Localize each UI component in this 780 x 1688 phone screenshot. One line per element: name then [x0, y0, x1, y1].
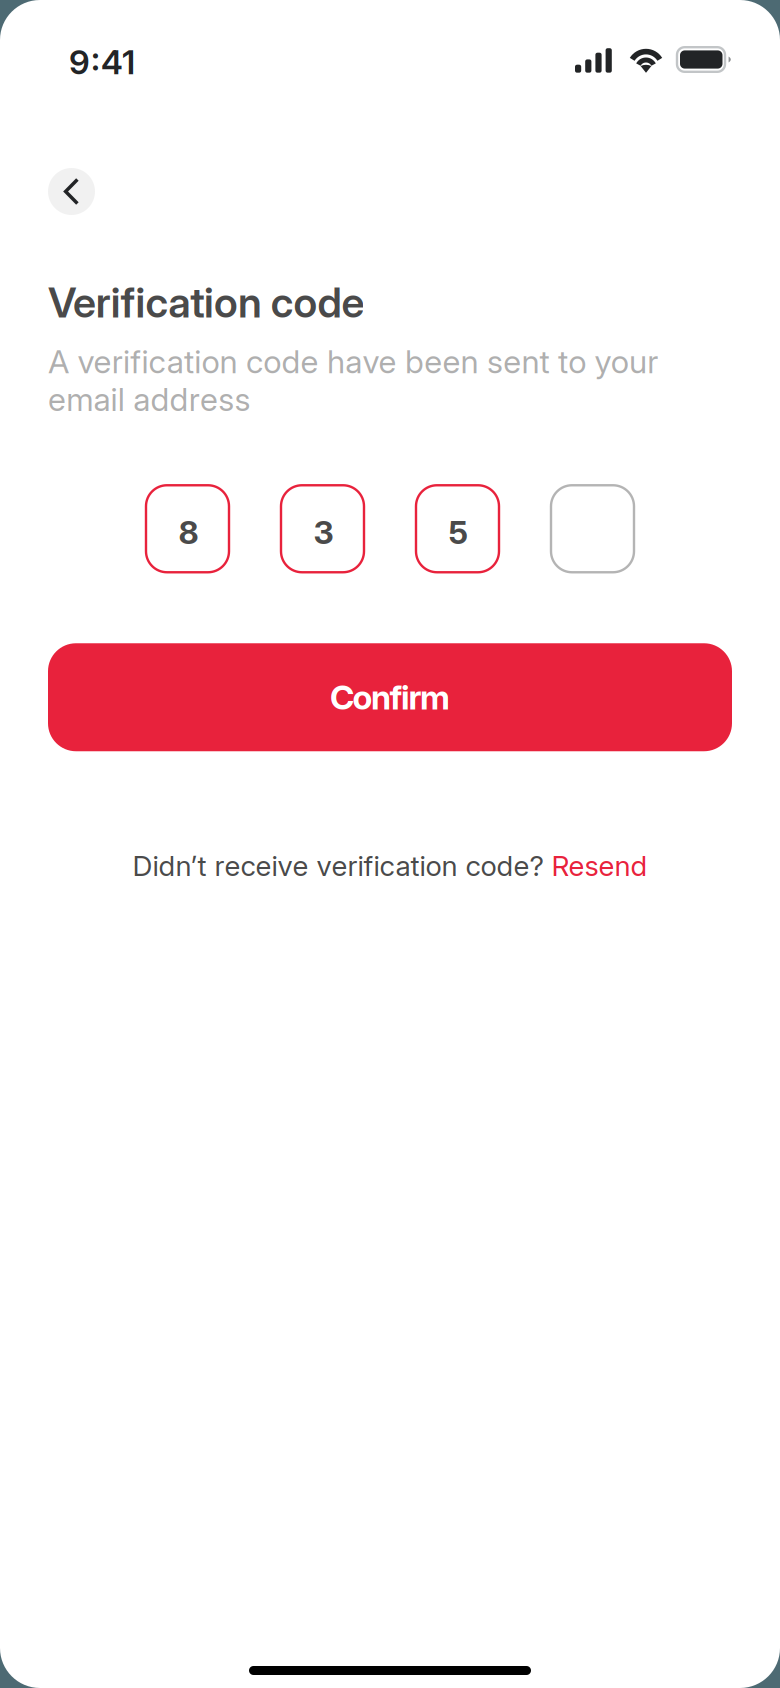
button[interactable]: Back: [48, 168, 95, 215]
staticText: 9:41: [69, 42, 135, 82]
button[interactable]: Didn’t receive verification code?: [132, 849, 647, 882]
staticText: A verification code have been sent to yo…: [48, 343, 658, 418]
staticText: Confirm: [330, 678, 450, 717]
staticText: Resend: [551, 849, 647, 882]
staticText: 3: [313, 513, 333, 551]
staticText: 8: [178, 513, 198, 551]
staticText: 5: [448, 513, 468, 551]
staticText: Verification code: [48, 278, 364, 327]
button[interactable]: Confirm: [48, 643, 732, 751]
staticText: Didn’t receive verification code?: [132, 849, 551, 882]
